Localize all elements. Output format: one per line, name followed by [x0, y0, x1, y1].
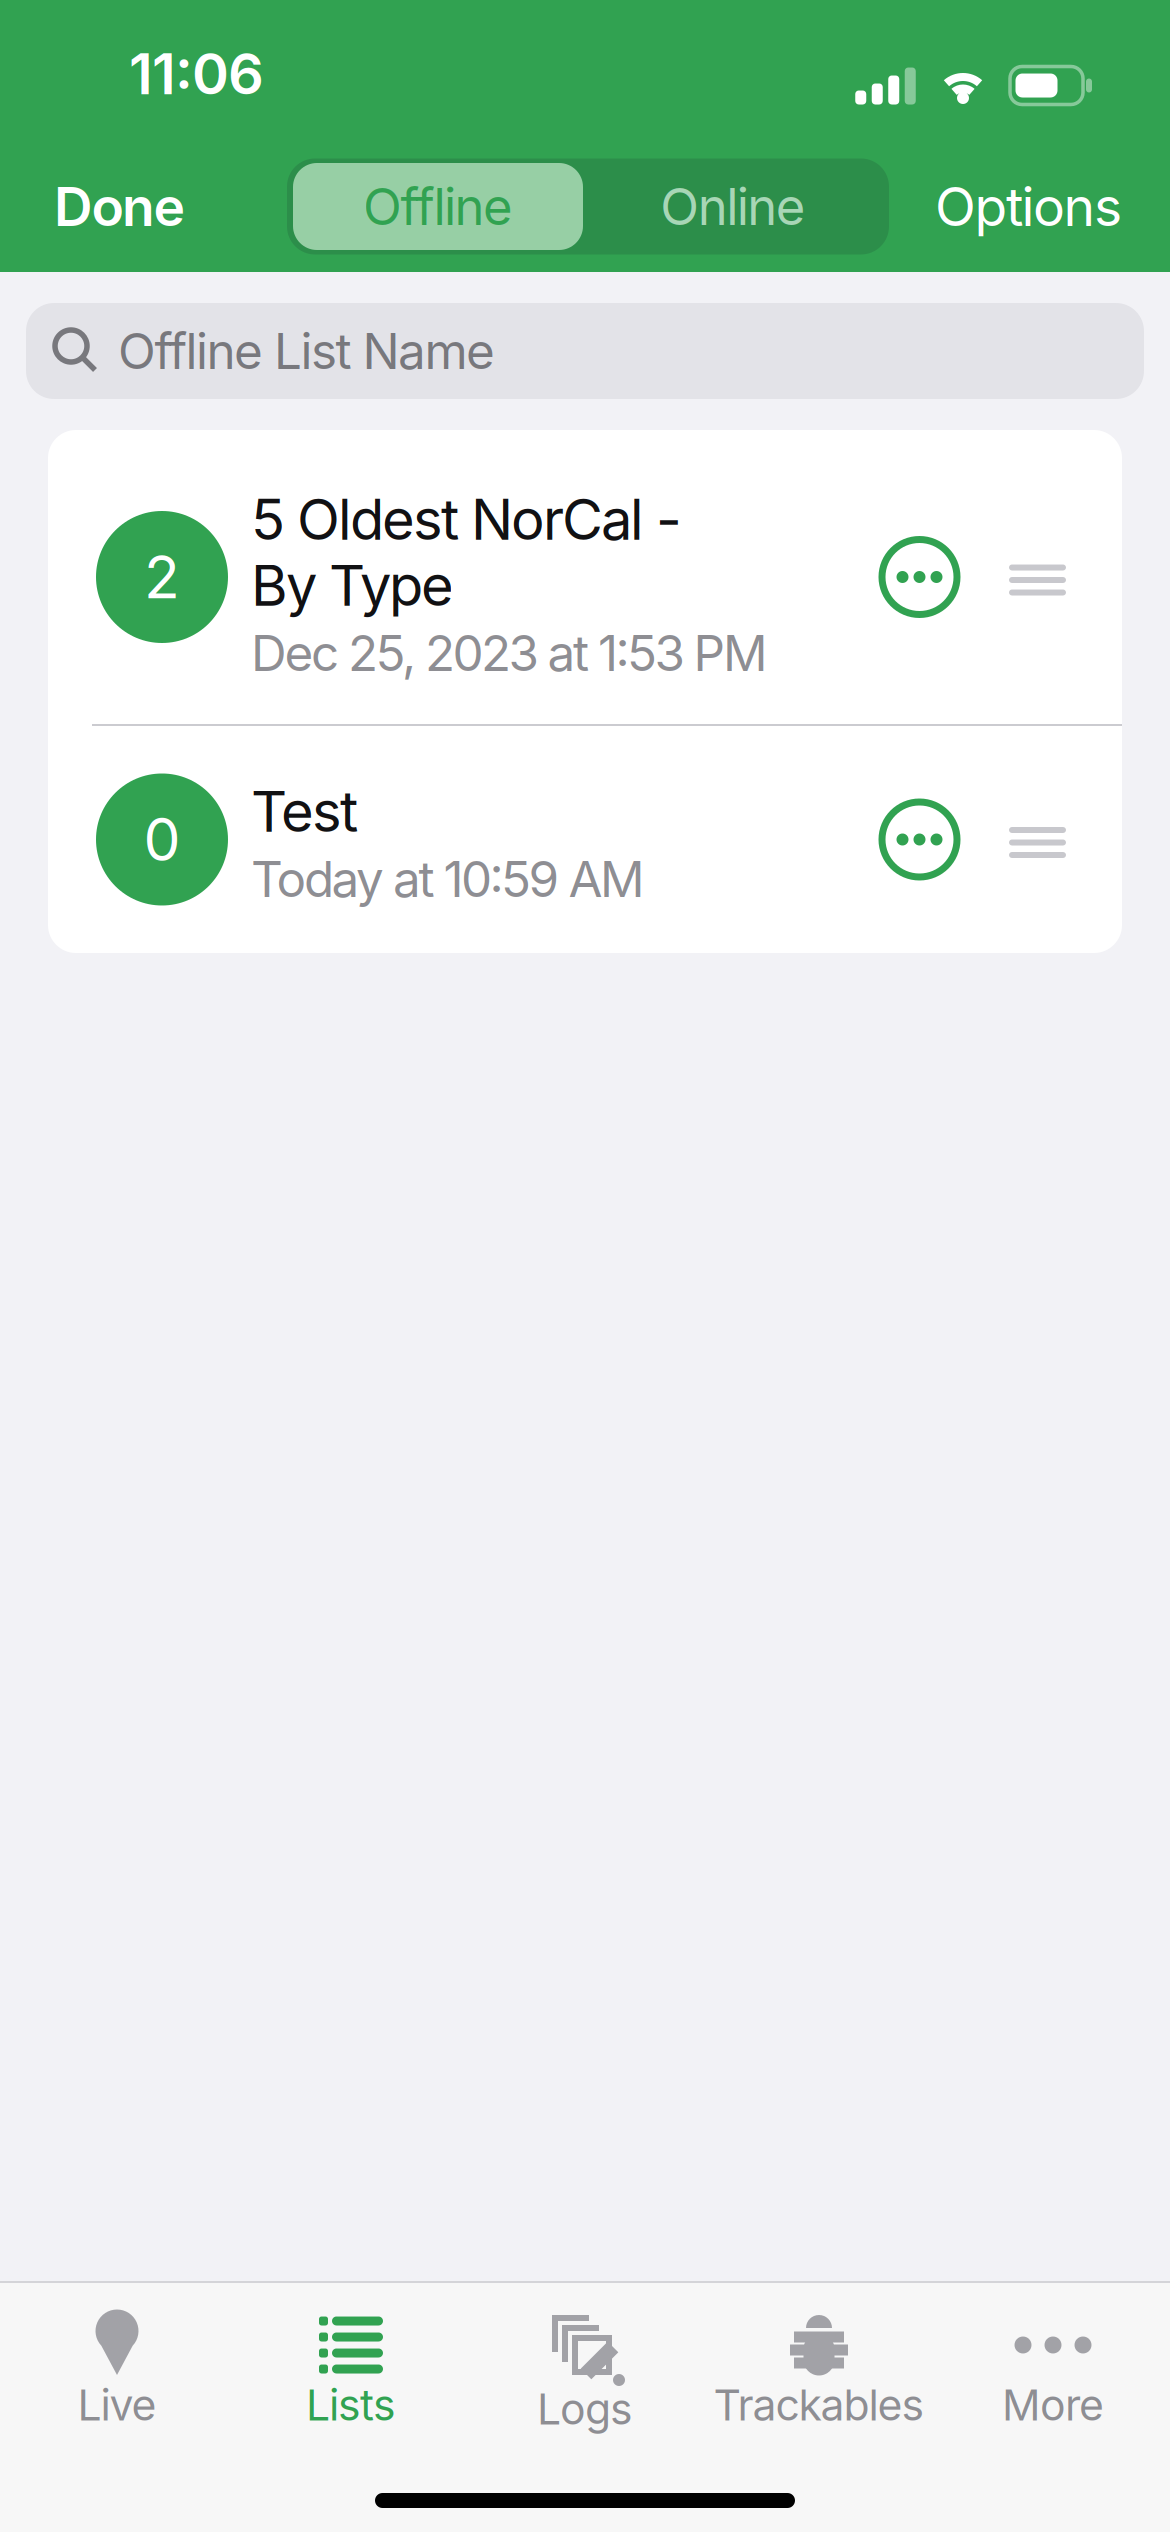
staticText: Test	[251, 778, 358, 845]
staticText: Offline List Name	[118, 321, 495, 381]
button[interactable]: Options	[889, 141, 1167, 272]
button[interactable]: List options	[882, 539, 957, 614]
staticText: Options	[935, 174, 1122, 239]
button[interactable]: Done	[3, 141, 287, 272]
button[interactable]: Offline	[293, 163, 583, 250]
staticText: 11:06	[129, 40, 264, 108]
button[interactable]: Lists	[234, 2283, 468, 2433]
button[interactable]: Offline List Name	[26, 303, 1144, 399]
staticText: Today at 10:59 AM	[251, 849, 645, 909]
button[interactable]: 0	[48, 726, 1122, 953]
staticText: 5 Oldest NorCal -	[251, 486, 682, 553]
staticText: Online	[660, 176, 806, 237]
button[interactable]: List options	[882, 802, 957, 877]
staticText: Offline	[363, 176, 513, 237]
staticText: Done	[54, 174, 185, 239]
staticText: 0	[143, 804, 180, 875]
staticText: Live	[77, 2379, 156, 2431]
button[interactable]: Live	[0, 2283, 234, 2433]
button[interactable]: Online	[583, 163, 883, 250]
staticText: Lists	[306, 2379, 396, 2431]
button[interactable]: Reorder list	[957, 821, 1122, 858]
staticText: Trackables	[713, 2379, 924, 2431]
button[interactable]: Trackables	[702, 2283, 936, 2433]
staticText: Dec 25, 2023 at 1:53 PM	[251, 623, 768, 683]
staticText: Logs	[537, 2383, 633, 2435]
staticText: More	[1002, 2379, 1104, 2431]
staticText: By Type	[251, 552, 454, 619]
button[interactable]: More	[936, 2283, 1170, 2433]
staticText: 2	[144, 541, 180, 612]
button[interactable]: Reorder list	[957, 558, 1122, 595]
button[interactable]: 2	[48, 430, 1122, 724]
button[interactable]: Logs	[468, 2283, 702, 2433]
